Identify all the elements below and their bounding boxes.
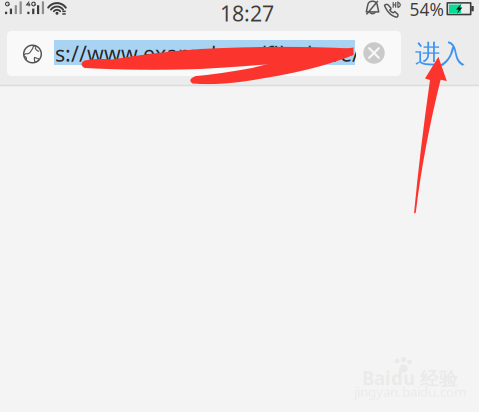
button[interactable]: Clear text <box>357 36 391 70</box>
staticText: jingyan.baidu.com <box>354 383 466 400</box>
staticText: s://www.example.cn/fileshare/ab/ <box>55 39 393 68</box>
staticText: Baidu 经验 <box>362 366 458 390</box>
staticText: 18:27 <box>220 0 274 27</box>
staticText: 54% <box>409 0 443 21</box>
button[interactable]: Address field <box>7 31 401 76</box>
button[interactable]: 进入 <box>407 31 473 77</box>
staticText: 进入 <box>415 38 465 69</box>
